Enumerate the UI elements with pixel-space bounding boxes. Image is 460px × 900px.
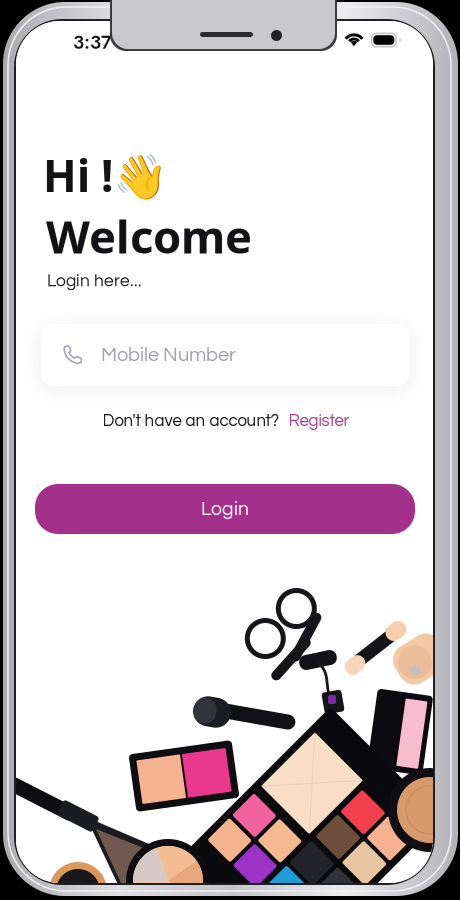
staticText: Don't have an account? [102, 412, 279, 430]
staticText: Login [201, 499, 249, 519]
staticText: Welcome [46, 206, 252, 266]
button[interactable]: Mobile Number [41, 324, 410, 386]
button[interactable]: Login [35, 484, 415, 534]
staticText: Register [288, 412, 349, 430]
button[interactable]: Register [279, 412, 349, 430]
staticText: Login here... [47, 272, 142, 290]
staticText: Hi !👋 [43, 146, 168, 204]
staticText: 3:37 [73, 28, 112, 56]
staticText: Mobile Number [101, 345, 236, 365]
